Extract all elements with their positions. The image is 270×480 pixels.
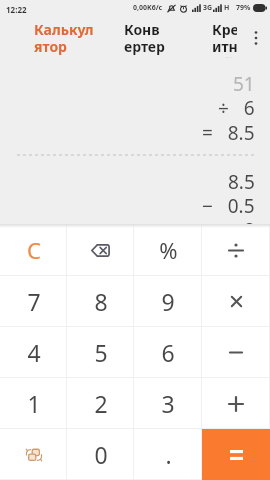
staticText: Кредитный [212,20,237,58]
staticText: % [159,235,178,265]
button[interactable]: 0 [67,429,134,480]
staticText: 4 [27,337,41,368]
staticText: 7 [27,286,41,317]
button[interactable]: . [134,429,202,480]
button[interactable]: Конвертер [118,16,173,60]
button[interactable]: Калькулятор [28,16,102,60]
button[interactable]: 6 [134,327,202,378]
button[interactable]: 9 [134,276,202,327]
button[interactable]: Plus [202,378,270,429]
staticText: 1 [27,388,41,419]
staticText: 5 [94,337,108,368]
staticText: ÷ 6 [218,95,255,121]
staticText: Конвертер [124,20,167,56]
staticText: 12:22 [6,4,27,15]
button[interactable]: Minus [202,327,270,378]
button[interactable]: 3 [134,378,202,429]
button[interactable]: 1 [0,378,67,429]
staticText: 51 [233,71,255,97]
staticText: 0 [94,439,108,470]
button[interactable]: 7 [0,276,67,327]
button[interactable]: 2 [67,378,134,429]
staticText: . [165,439,172,470]
staticText: 0,00K6/c [133,3,163,13]
staticText: − 0.5 [202,193,255,219]
staticText: C [27,235,41,265]
staticText: 9 [161,286,175,317]
button[interactable]: Backspace [67,224,134,276]
button[interactable]: % [134,224,202,276]
staticText: 3G [203,3,213,13]
staticText: 79% [236,3,251,13]
button[interactable]: Кредитный [206,16,243,60]
staticText: 8 [94,286,108,317]
staticText: Калькулятор [34,20,96,56]
button[interactable]: 5 [67,327,134,378]
button[interactable]: Equals [202,429,270,480]
button[interactable]: C [0,224,67,276]
staticText: 3 [161,388,175,419]
button[interactable]: Divide [202,224,270,276]
button[interactable]: Convert [0,429,67,480]
staticText: 8 [244,217,255,224]
button[interactable]: 4 [0,327,67,378]
button[interactable]: More options [247,29,265,47]
staticText: 6 [161,337,175,368]
staticText: 8.5 [228,169,255,195]
staticText: H [224,3,230,13]
staticText: = 8.5 [202,120,255,146]
staticText: 2 [94,388,108,419]
button[interactable]: 8 [67,276,134,327]
button[interactable]: Multiply [202,276,270,327]
